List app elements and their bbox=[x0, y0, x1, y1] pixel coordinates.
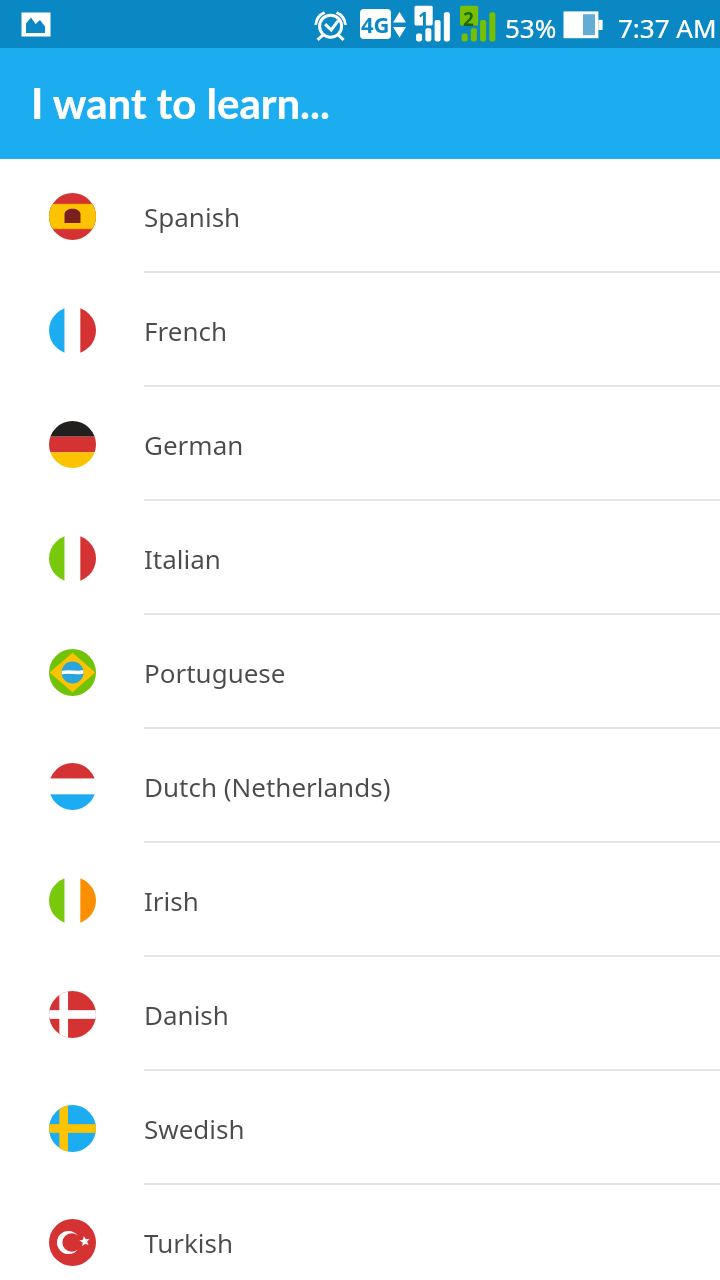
staticText: Turkish bbox=[144, 1225, 234, 1260]
staticText: 2 bbox=[463, 6, 474, 32]
staticText: 53% bbox=[505, 10, 557, 45]
button[interactable]: Italian bbox=[0, 501, 720, 615]
staticText: 7:37 AM bbox=[618, 10, 717, 45]
button[interactable]: Portuguese bbox=[0, 615, 720, 729]
staticText: Danish bbox=[144, 997, 229, 1032]
staticText: Spanish bbox=[144, 199, 241, 234]
button[interactable]: I want to learn... bbox=[0, 48, 720, 159]
button[interactable]: Danish bbox=[0, 957, 720, 1071]
staticText: Swedish bbox=[144, 1111, 245, 1146]
button[interactable]: Swedish bbox=[0, 1071, 720, 1185]
staticText: French bbox=[144, 313, 227, 348]
staticText: Italian bbox=[144, 541, 221, 576]
button[interactable]: Irish bbox=[0, 843, 720, 957]
staticText: 4G bbox=[361, 9, 390, 39]
staticText: Dutch (Netherlands) bbox=[144, 769, 391, 804]
staticText: Portuguese bbox=[144, 655, 286, 690]
button[interactable]: German bbox=[0, 387, 720, 501]
button[interactable]: French bbox=[0, 273, 720, 387]
staticText: I want to learn... bbox=[31, 78, 331, 128]
button[interactable]: Spanish bbox=[0, 159, 720, 273]
staticText: 1 bbox=[418, 6, 429, 32]
staticText: Irish bbox=[144, 883, 199, 918]
staticText: German bbox=[144, 427, 244, 462]
button[interactable]: Turkish bbox=[0, 1185, 720, 1280]
button[interactable]: Dutch (Netherlands) bbox=[0, 729, 720, 843]
